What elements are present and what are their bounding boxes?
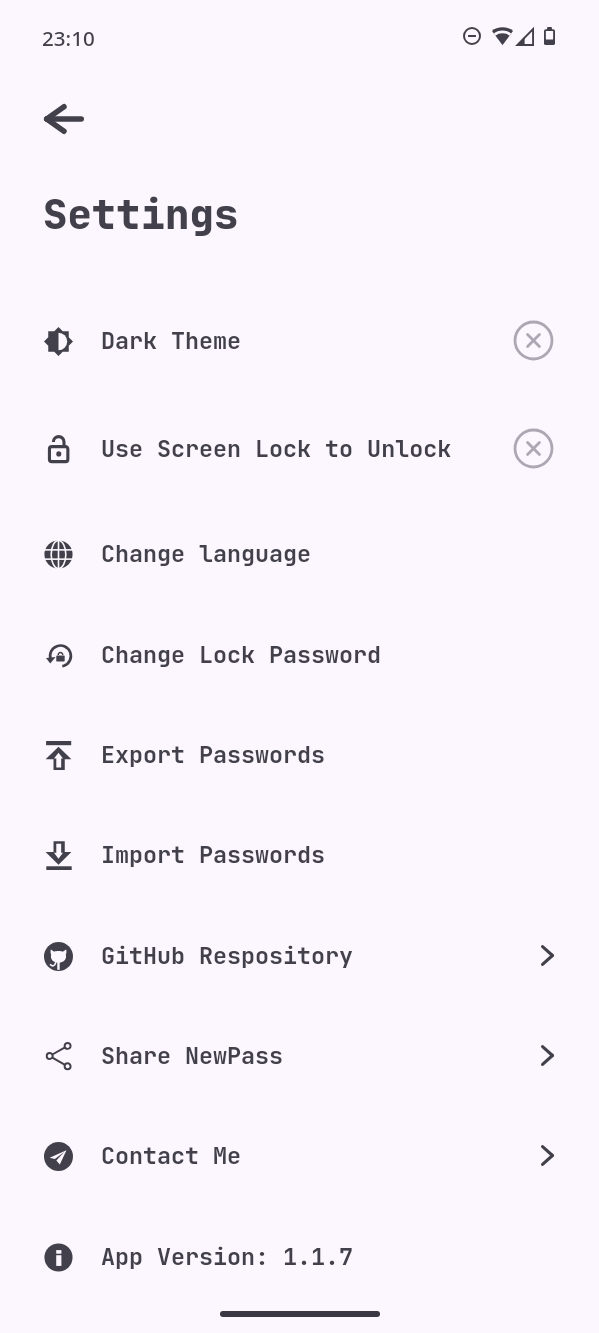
button[interactable]: Share NewPass: [0, 1005, 599, 1106]
button[interactable]: Use Screen Lock to Unlock: [0, 398, 599, 499]
staticText: Dark Theme: [101, 325, 242, 356]
staticText: GitHub Respository: [101, 940, 354, 971]
staticText: 23:10: [42, 24, 95, 52]
button[interactable]: Import Passwords: [0, 804, 599, 905]
staticText: Contact Me: [101, 1140, 242, 1171]
button[interactable]: Change Lock Password: [0, 604, 599, 705]
button[interactable]: Contact Me: [0, 1105, 599, 1206]
staticText: Settings: [43, 187, 239, 241]
button[interactable]: Export Passwords: [0, 704, 599, 805]
staticText: Change Lock Password: [101, 639, 382, 670]
staticText: Use Screen Lock to Unlock: [101, 433, 452, 464]
staticText: Change language: [101, 538, 312, 569]
staticText: App Version: 1.1.7: [101, 1241, 354, 1272]
button[interactable]: Change language: [0, 503, 599, 604]
staticText: Export Passwords: [101, 739, 326, 770]
button[interactable]: Dark Theme: [0, 290, 599, 391]
button[interactable]: GitHub Respository: [0, 905, 599, 1006]
button[interactable]: Back: [35, 95, 93, 143]
staticText: Import Passwords: [101, 839, 326, 870]
staticText: Share NewPass: [101, 1040, 284, 1071]
button[interactable]: App Version: 1.1.7: [0, 1206, 599, 1307]
